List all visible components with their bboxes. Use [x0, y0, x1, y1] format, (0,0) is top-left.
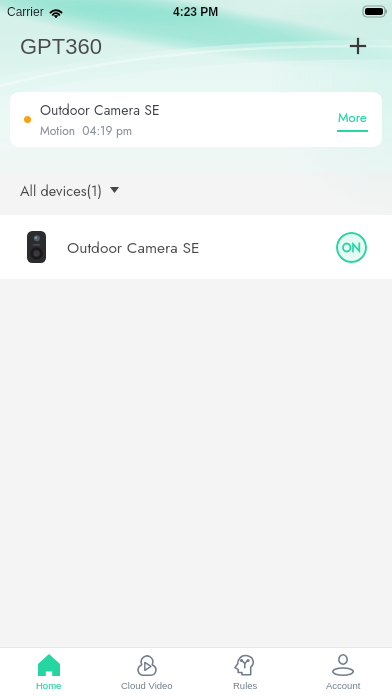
staticText: Carrier — [7, 5, 44, 18]
staticText: Account — [326, 680, 361, 691]
staticText: Cloud Video — [121, 680, 173, 691]
button[interactable]: Outdoor Camera SE — [0, 215, 392, 279]
staticText: 4:23 PM — [173, 5, 219, 18]
staticText: ON — [342, 239, 361, 256]
button[interactable]: ON — [336, 232, 367, 263]
button[interactable]: All devices(1) — [20, 179, 119, 201]
staticText: Rules — [233, 680, 258, 691]
staticText: Home — [36, 680, 62, 691]
button[interactable]: Rules — [196, 648, 294, 696]
button[interactable]: Cloud Video — [98, 648, 196, 696]
staticText: Outdoor Camera SE — [40, 100, 160, 120]
button[interactable]: Add device — [346, 34, 370, 58]
staticText: Outdoor Camera SE — [67, 236, 200, 258]
button[interactable]: Account — [294, 648, 392, 696]
staticText: GPT360 — [20, 34, 102, 59]
staticText: Motion 04:19 pm — [40, 122, 133, 139]
staticText: All devices(1) — [20, 180, 103, 201]
staticText: More — [338, 108, 367, 127]
button[interactable]: Outdoor Camera SE — [10, 92, 382, 147]
button[interactable]: Home — [0, 648, 98, 696]
